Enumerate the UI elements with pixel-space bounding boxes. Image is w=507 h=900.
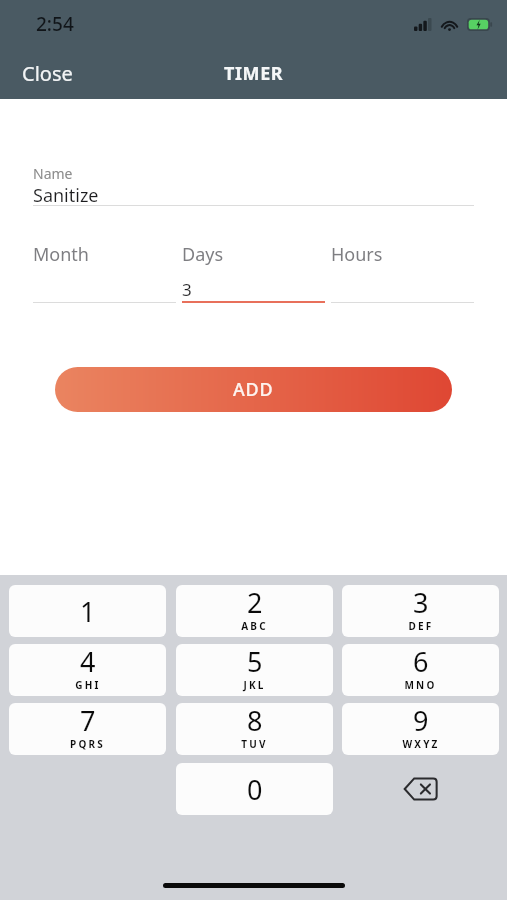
button[interactable]: 7 (9, 703, 166, 755)
staticText: Days (182, 242, 224, 267)
button[interactable]: 5 (176, 644, 333, 696)
staticText: Sanitize (33, 183, 99, 207)
staticText: Month (33, 242, 89, 267)
button[interactable]: Sanitize (33, 183, 474, 207)
staticText: TUV (241, 737, 268, 751)
staticText: 3 (182, 278, 192, 301)
button[interactable] (33, 271, 176, 303)
button[interactable]: 8 (176, 703, 333, 755)
staticText: Close (22, 60, 73, 87)
staticText: GHI (75, 678, 101, 692)
staticText: 2 (247, 585, 263, 621)
button[interactable]: 3 (182, 271, 325, 303)
button[interactable]: 9 (342, 703, 499, 755)
button[interactable]: 1 (9, 585, 166, 637)
staticText: WXYZ (402, 737, 440, 751)
button[interactable]: 6 (342, 644, 499, 696)
button[interactable]: 2 (176, 585, 333, 637)
staticText: 0 (247, 771, 263, 808)
staticText: MNO (404, 678, 437, 692)
staticText: 9 (413, 703, 429, 739)
button[interactable]: ADD (55, 367, 452, 412)
staticText: JKL (243, 678, 266, 692)
button[interactable]: Delete (342, 763, 499, 815)
button[interactable]: Close (0, 52, 87, 95)
staticText: DEF (408, 619, 434, 633)
staticText: 4 (80, 644, 96, 680)
staticText: 8 (247, 703, 263, 739)
staticText: TIMER (224, 61, 284, 86)
staticText: ABC (241, 619, 268, 633)
button[interactable]: 4 (9, 644, 166, 696)
staticText: Name (33, 164, 73, 183)
staticText: 6 (413, 644, 429, 680)
staticText: 5 (247, 644, 263, 680)
staticText: PQRS (70, 737, 105, 751)
staticText: 7 (80, 703, 96, 739)
staticText: 2:54 (36, 11, 74, 37)
staticText: Hours (331, 242, 383, 267)
staticText: ADD (233, 377, 274, 402)
staticText: 3 (413, 585, 429, 621)
staticText: 1 (80, 593, 96, 630)
button[interactable]: 3 (342, 585, 499, 637)
button[interactable]: 0 (176, 763, 333, 815)
button[interactable] (331, 271, 474, 303)
